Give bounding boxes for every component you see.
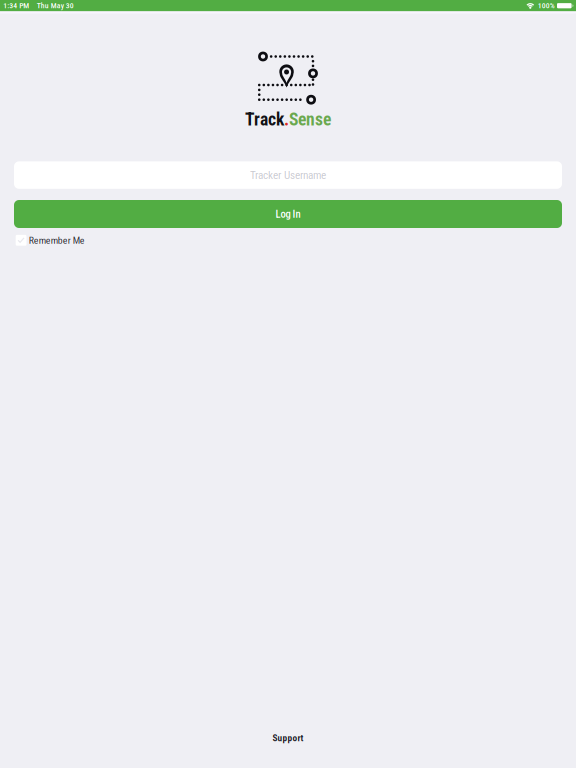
staticText: Support — [272, 732, 303, 743]
staticText: Log In — [275, 208, 300, 220]
staticText: 1:34 PM — [3, 1, 29, 10]
staticText: Track — [245, 109, 284, 130]
staticText: 100% — [538, 1, 555, 10]
button[interactable]: Remember Me — [16, 235, 85, 246]
button[interactable]: Tracker Username — [0, 161, 576, 189]
staticText: Tracker Username — [250, 168, 326, 182]
button[interactable]: Log In — [0, 200, 576, 228]
staticText: . — [284, 109, 289, 130]
button[interactable]: Support — [0, 732, 576, 744]
staticText: Thu May 30 — [37, 1, 74, 10]
staticText: Remember Me — [29, 234, 85, 246]
staticText: Sense — [289, 109, 331, 130]
